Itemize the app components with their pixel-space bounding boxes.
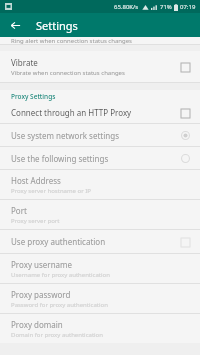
staticText: Use proxy authentication — [11, 236, 178, 247]
staticText: Proxy server hostname or IP — [11, 187, 91, 195]
button[interactable]: Toggle checkbox — [178, 60, 192, 74]
button[interactable]: Select option — [178, 128, 192, 142]
staticText: Proxy domain — [11, 319, 63, 330]
button[interactable]: Use proxy authentication — [0, 230, 200, 253]
staticText: Use the following settings — [11, 153, 178, 164]
staticText: Host Address — [11, 175, 61, 186]
staticText: 65.80K/s — [114, 3, 139, 11]
button[interactable]: Vibrate — [0, 51, 200, 82]
staticText: Settings — [36, 18, 78, 33]
staticText: Ring alert when connection status change… — [11, 37, 132, 44]
staticText: 07:19 — [180, 3, 196, 11]
button[interactable]: Host Address — [0, 170, 200, 199]
staticText: Proxy Settings — [11, 92, 56, 101]
button[interactable]: Use system network settings — [0, 124, 200, 146]
staticText: Use system network settings — [11, 130, 178, 141]
staticText: Proxy server port — [11, 217, 60, 225]
staticText: Connect through an HTTP Proxy — [11, 107, 178, 118]
staticText: Proxy username — [11, 259, 73, 270]
staticText: Vibrate — [11, 57, 38, 68]
button[interactable]: Use the following settings — [0, 147, 200, 169]
staticText: Password for proxy authentication — [11, 301, 108, 309]
button[interactable]: Toggle checkbox — [178, 235, 192, 249]
staticText: Domain for proxy authentication — [11, 331, 103, 339]
button[interactable]: Toggle checkbox — [178, 106, 192, 120]
button[interactable]: Select option — [178, 151, 192, 165]
button[interactable]: Proxy password — [0, 284, 200, 313]
staticText: Username for proxy authentication — [11, 271, 110, 279]
staticText: 71% — [160, 3, 172, 11]
button[interactable]: Proxy domain — [0, 314, 200, 343]
staticText: Port — [11, 205, 27, 216]
button[interactable]: Ring alert when connection status change… — [0, 37, 200, 44]
button[interactable]: Connect through an HTTP Proxy — [0, 102, 200, 123]
staticText: Proxy password — [11, 289, 71, 300]
button[interactable]: Back — [7, 17, 23, 33]
button[interactable]: Proxy username — [0, 254, 200, 283]
button[interactable]: Port — [0, 200, 200, 229]
staticText: Vibrate when connection status changes — [11, 69, 125, 77]
